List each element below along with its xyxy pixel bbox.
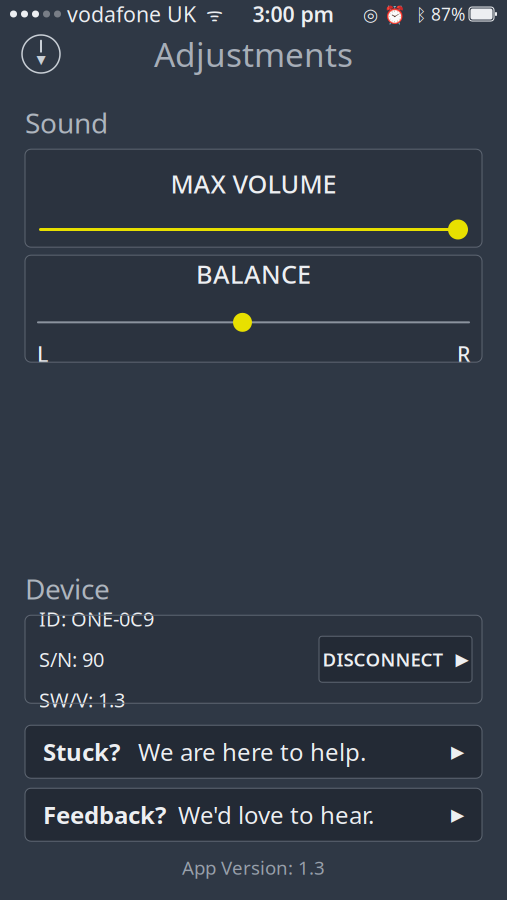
button[interactable]: Download (15, 28, 67, 80)
staticText: SW/V: 1.3 (39, 686, 125, 713)
staticText: 3:00 pm (252, 0, 333, 28)
staticText: We'd love to hear. (178, 799, 374, 831)
staticText: S/N: 90 (39, 646, 104, 672)
button[interactable]: Stuck? (25, 725, 482, 778)
staticText: ▶ (455, 649, 468, 669)
staticText: DISCONNECT (322, 647, 443, 672)
staticText: Adjustments (154, 32, 353, 76)
button[interactable]: DISCONNECT (319, 636, 472, 682)
staticText: ◎ ⏰ ᛒ 87% (363, 2, 465, 25)
staticText: L (37, 340, 48, 368)
staticText: ID: ONE-0C9 (39, 605, 154, 632)
staticText: Stuck? (43, 736, 120, 768)
button[interactable]: Feedback? (25, 788, 482, 841)
staticText: ▶ (451, 742, 464, 762)
staticText: MAX VOLUME (170, 167, 336, 200)
staticText: ▶ (451, 805, 464, 825)
staticText: App Version: 1.3 (182, 855, 325, 880)
staticText: We are here to help. (138, 736, 366, 768)
staticText: Device (25, 570, 110, 607)
staticText: Feedback? (43, 799, 166, 831)
staticText: R (457, 340, 470, 368)
staticText: vodafone UK (61, 0, 196, 28)
staticText: ▼ (36, 53, 45, 66)
staticText: BALANCE (196, 257, 311, 291)
staticText: Sound (25, 104, 108, 141)
staticText: ᯤ (196, 2, 223, 26)
